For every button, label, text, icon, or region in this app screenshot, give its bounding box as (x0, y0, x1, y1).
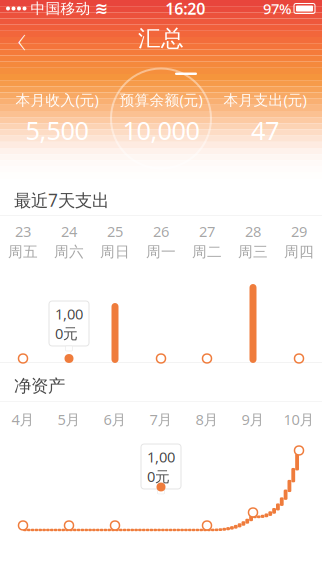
staticText: 预算余额(元) (119, 90, 202, 109)
staticText: 最近7天支出 (14, 188, 109, 211)
staticText: 24 (61, 221, 77, 241)
staticText: 47 (251, 113, 279, 147)
staticText: 28 (245, 221, 261, 241)
staticText: 27 (199, 221, 215, 241)
staticText: 净资产 (14, 375, 65, 397)
staticText: 9月 (241, 409, 264, 429)
button[interactable]: Back (0, 18, 44, 58)
staticText: 8月 (195, 409, 218, 429)
staticText: 10月 (283, 409, 314, 429)
staticText: 97% (263, 0, 291, 18)
staticText: 1,000元 (147, 447, 175, 486)
staticText: 周一 (146, 243, 176, 261)
staticText: ≋ (94, 0, 107, 18)
staticText: 周五 (8, 243, 38, 261)
staticText: 6月 (103, 409, 126, 429)
staticText: 周四 (284, 243, 314, 261)
staticText: 23 (15, 221, 31, 241)
staticText: 周二 (192, 243, 222, 261)
staticText: 26 (153, 221, 169, 241)
staticText: 周日 (100, 243, 130, 261)
staticText: 16:20 (165, 0, 205, 19)
staticText: 中国移动 (30, 0, 90, 17)
staticText: 10,000 (122, 113, 199, 147)
staticText: 本月支出(元) (223, 90, 306, 109)
staticText: 本月收入(元) (15, 90, 98, 109)
staticText: 周三 (238, 243, 268, 261)
staticText: 29 (291, 221, 307, 241)
staticText: 5,500 (25, 113, 88, 147)
staticText: 4月 (11, 409, 34, 429)
staticText: 汇总 (138, 25, 184, 52)
staticText: 25 (107, 221, 123, 241)
staticText: 1,000元 (55, 304, 83, 343)
staticText: ‹ (17, 12, 26, 65)
staticText: 5月 (57, 409, 80, 429)
staticText: 7月 (149, 409, 172, 429)
staticText: 周六 (54, 243, 84, 261)
